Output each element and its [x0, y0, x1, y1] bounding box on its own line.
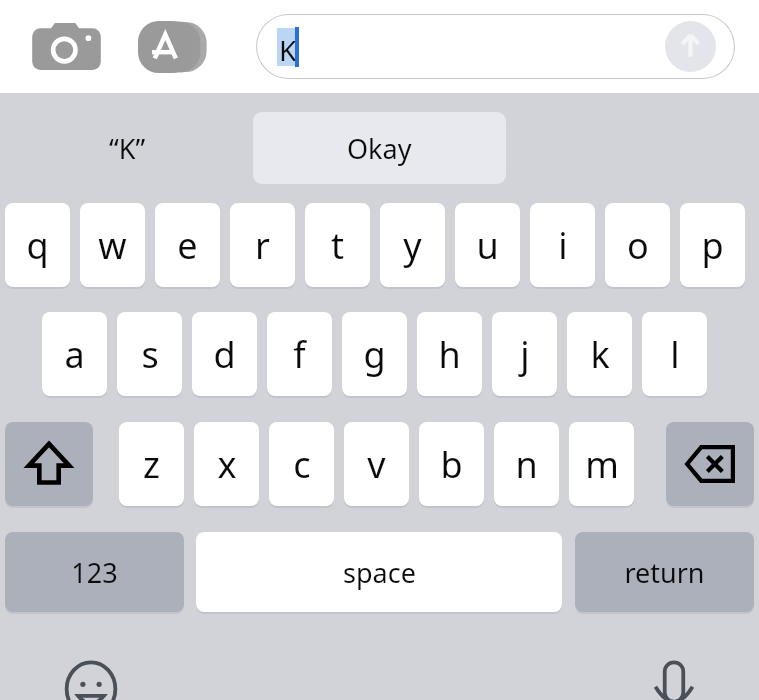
staticText: Okay	[347, 130, 412, 167]
button[interactable]: Camera	[30, 21, 103, 73]
button[interactable]: k	[567, 312, 632, 396]
button[interactable]: z	[119, 422, 184, 506]
staticText: i	[558, 221, 568, 270]
button[interactable]: i	[530, 203, 595, 287]
staticText: b	[440, 440, 463, 489]
button[interactable]: p	[680, 203, 745, 287]
staticText: y	[403, 221, 422, 270]
button[interactable]: u	[455, 203, 520, 287]
staticText: p	[701, 221, 724, 270]
button[interactable]: Emoji	[62, 660, 120, 700]
button[interactable]: e	[155, 203, 220, 287]
staticText: t	[331, 221, 344, 270]
button[interactable]: return	[575, 532, 754, 612]
staticText: o	[627, 221, 649, 270]
button[interactable]: m	[569, 422, 634, 506]
staticText: u	[476, 221, 499, 270]
button[interactable]: f	[267, 312, 332, 396]
button[interactable]: b	[419, 422, 484, 506]
staticText: w	[98, 221, 127, 270]
staticText: space	[343, 554, 416, 591]
button[interactable]: c	[269, 422, 334, 506]
staticText: g	[363, 330, 386, 379]
button[interactable]: “K”	[60, 112, 195, 184]
button[interactable]: g	[342, 312, 407, 396]
staticText: K	[279, 31, 297, 69]
button[interactable]: j	[492, 312, 557, 396]
button[interactable]: Shift	[5, 422, 93, 506]
staticText: return	[624, 554, 705, 591]
button[interactable]: v	[344, 422, 409, 506]
button[interactable]: Apps	[138, 21, 216, 73]
staticText: n	[515, 440, 538, 489]
button[interactable]: w	[80, 203, 145, 287]
button[interactable]: K	[256, 14, 735, 79]
staticText: m	[585, 440, 619, 489]
button[interactable]: d	[192, 312, 257, 396]
button[interactable]: x	[194, 422, 259, 506]
staticText: h	[438, 330, 461, 379]
staticText: r	[255, 221, 270, 270]
staticText: c	[293, 440, 311, 489]
button[interactable]: Dictation	[645, 660, 703, 700]
staticText: a	[64, 330, 85, 379]
button[interactable]: a	[42, 312, 107, 396]
button[interactable]: Okay	[253, 112, 506, 184]
button[interactable]: t	[305, 203, 370, 287]
button[interactable]: y	[380, 203, 445, 287]
staticText: v	[367, 440, 386, 489]
button[interactable]: Send	[665, 21, 716, 72]
staticText: d	[213, 330, 236, 379]
button[interactable]: space	[196, 532, 562, 612]
staticText: x	[217, 440, 237, 489]
staticText: z	[143, 440, 160, 489]
button[interactable]: Backspace	[666, 422, 754, 506]
button[interactable]: l	[642, 312, 707, 396]
button[interactable]: h	[417, 312, 482, 396]
staticText: e	[177, 221, 198, 270]
staticText: j	[520, 330, 530, 379]
staticText: f	[293, 330, 306, 379]
button[interactable]: s	[117, 312, 182, 396]
staticText: k	[590, 330, 610, 379]
button[interactable]: o	[605, 203, 670, 287]
staticText: 123	[71, 554, 118, 591]
button[interactable]: n	[494, 422, 559, 506]
staticText: q	[26, 221, 49, 270]
staticText: s	[141, 330, 159, 379]
button[interactable]: r	[230, 203, 295, 287]
button[interactable]: 123	[5, 532, 184, 612]
staticText: “K”	[109, 130, 146, 167]
button[interactable]: q	[5, 203, 70, 287]
staticText: l	[670, 330, 680, 379]
